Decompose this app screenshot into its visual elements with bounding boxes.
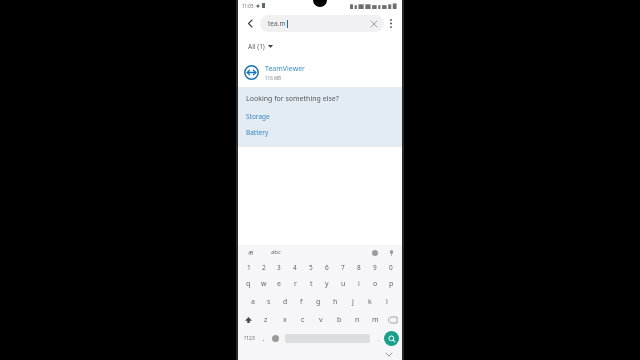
staticText: e: [277, 279, 281, 289]
button[interactable]: Voice input: [387, 248, 396, 257]
staticText: q: [246, 279, 251, 289]
staticText: v: [319, 315, 323, 325]
staticText: 116 MB: [265, 75, 281, 81]
button[interactable]: y: [319, 275, 335, 293]
staticText: i: [358, 279, 360, 289]
staticText: 0: [389, 263, 393, 272]
staticText: 3: [277, 263, 281, 272]
button[interactable]: d: [277, 293, 293, 311]
button[interactable]: i: [351, 275, 367, 293]
button[interactable]: v: [312, 311, 330, 329]
staticText: abc: [271, 248, 281, 256]
button[interactable]: ,: [258, 329, 269, 348]
button[interactable]: TeamViewer: [238, 57, 402, 87]
staticText: ,: [263, 335, 265, 343]
staticText: w: [261, 279, 267, 289]
button[interactable]: r: [287, 275, 303, 293]
staticText: 7: [341, 263, 345, 272]
button[interactable]: Backspace: [384, 311, 400, 329]
button[interactable]: Change language: [269, 329, 282, 348]
button[interactable]: अ: [244, 248, 257, 257]
button[interactable]: 1: [241, 259, 256, 275]
button[interactable]: Clear search: [368, 18, 380, 30]
button[interactable]: s: [261, 293, 277, 311]
staticText: n: [355, 315, 360, 325]
button[interactable]: l: [378, 293, 395, 311]
staticText: 8: [357, 263, 361, 272]
staticText: l: [386, 297, 388, 307]
button[interactable]: g: [310, 293, 327, 311]
staticText: ?123: [244, 335, 255, 342]
button[interactable]: 5: [303, 259, 319, 275]
button[interactable]: 9: [367, 259, 383, 275]
button[interactable]: Battery: [246, 127, 269, 138]
button[interactable]: More options: [384, 16, 398, 30]
button[interactable]: w: [256, 275, 271, 293]
button[interactable]: t: [303, 275, 319, 293]
staticText: TeamViewer: [265, 64, 305, 74]
button[interactable]: c: [294, 311, 312, 329]
staticText: u: [341, 279, 346, 289]
button[interactable]: p: [383, 275, 399, 293]
staticText: x: [283, 315, 287, 325]
button[interactable]: abc: [267, 248, 285, 256]
staticText: c: [301, 315, 305, 325]
staticText: अ: [248, 248, 253, 257]
button[interactable]: All (1): [246, 40, 275, 53]
button[interactable]: Search: [384, 331, 399, 346]
staticText: 9: [373, 263, 377, 272]
staticText: h: [333, 297, 338, 307]
button[interactable]: 3: [271, 259, 287, 275]
staticText: t: [310, 279, 313, 289]
staticText: 6: [325, 263, 329, 272]
button[interactable]: 6: [319, 259, 335, 275]
button[interactable]: q: [241, 275, 256, 293]
staticText: All (1): [248, 42, 265, 51]
staticText: 4: [293, 263, 297, 272]
button[interactable]: Emoji: [370, 248, 379, 257]
staticText: Storage: [246, 112, 270, 121]
staticText: 1: [247, 263, 251, 272]
staticText: j: [352, 297, 354, 307]
staticText: s: [267, 297, 271, 307]
staticText: z: [264, 315, 268, 325]
staticText: k: [368, 297, 372, 307]
staticText: 2: [262, 263, 266, 272]
button[interactable]: Storage: [246, 111, 270, 122]
button[interactable]: 8: [351, 259, 367, 275]
staticText: o: [373, 279, 378, 289]
button[interactable]: j: [344, 293, 361, 311]
button[interactable]: 4: [287, 259, 303, 275]
button[interactable]: 2: [256, 259, 271, 275]
staticText: g: [316, 297, 321, 307]
button[interactable]: ?123: [241, 329, 258, 348]
button[interactable]: a: [245, 293, 261, 311]
staticText: f: [300, 297, 303, 307]
button[interactable]: b: [330, 311, 348, 329]
button[interactable]: 0: [383, 259, 399, 275]
staticText: p: [389, 279, 394, 289]
button[interactable]: e: [271, 275, 287, 293]
button[interactable]: k: [361, 293, 378, 311]
staticText: y: [325, 279, 329, 289]
button[interactable]: z: [256, 311, 275, 329]
staticText: Battery: [246, 128, 269, 137]
staticText: Looking for something else?: [246, 94, 339, 104]
staticText: b: [337, 315, 342, 325]
button[interactable]: tea.m: [260, 15, 384, 32]
button[interactable]: u: [335, 275, 351, 293]
button[interactable]: o: [367, 275, 383, 293]
staticText: a: [251, 297, 255, 307]
button[interactable]: .: [373, 329, 384, 348]
button[interactable]: Back: [242, 15, 258, 31]
button[interactable]: f: [293, 293, 310, 311]
button[interactable]: Hide keyboard: [384, 349, 394, 359]
button[interactable]: 7: [335, 259, 351, 275]
button[interactable]: Shift: [240, 311, 256, 329]
button[interactable]: m: [366, 311, 384, 329]
button[interactable]: n: [348, 311, 366, 329]
button[interactable]: x: [275, 311, 294, 329]
staticText: m: [372, 315, 379, 325]
button[interactable]: h: [327, 293, 344, 311]
